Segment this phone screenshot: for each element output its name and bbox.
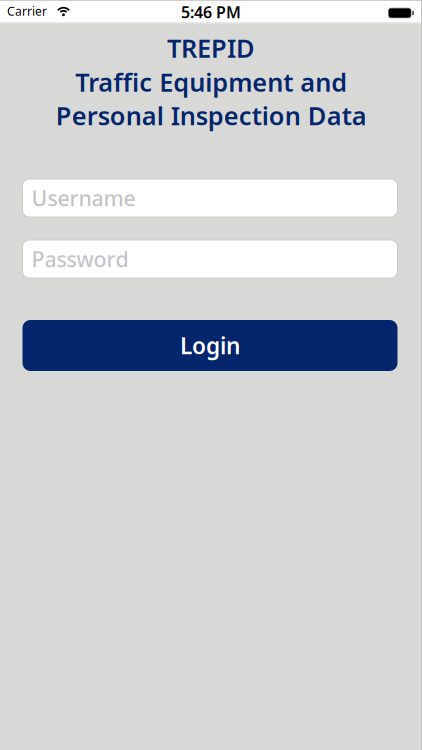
- button[interactable]: Username: [22, 179, 397, 217]
- staticText: Password: [31, 245, 128, 273]
- staticText: Traffic Equipment and Personal Inspectio…: [55, 65, 366, 132]
- staticText: Username: [31, 184, 135, 212]
- staticText: Carrier: [7, 3, 47, 19]
- staticText: Login: [180, 330, 240, 360]
- staticText: TREPID: [167, 31, 255, 65]
- button[interactable]: Password: [22, 240, 397, 278]
- staticText: 5:46 PM: [181, 1, 241, 23]
- button[interactable]: Login: [22, 320, 397, 371]
